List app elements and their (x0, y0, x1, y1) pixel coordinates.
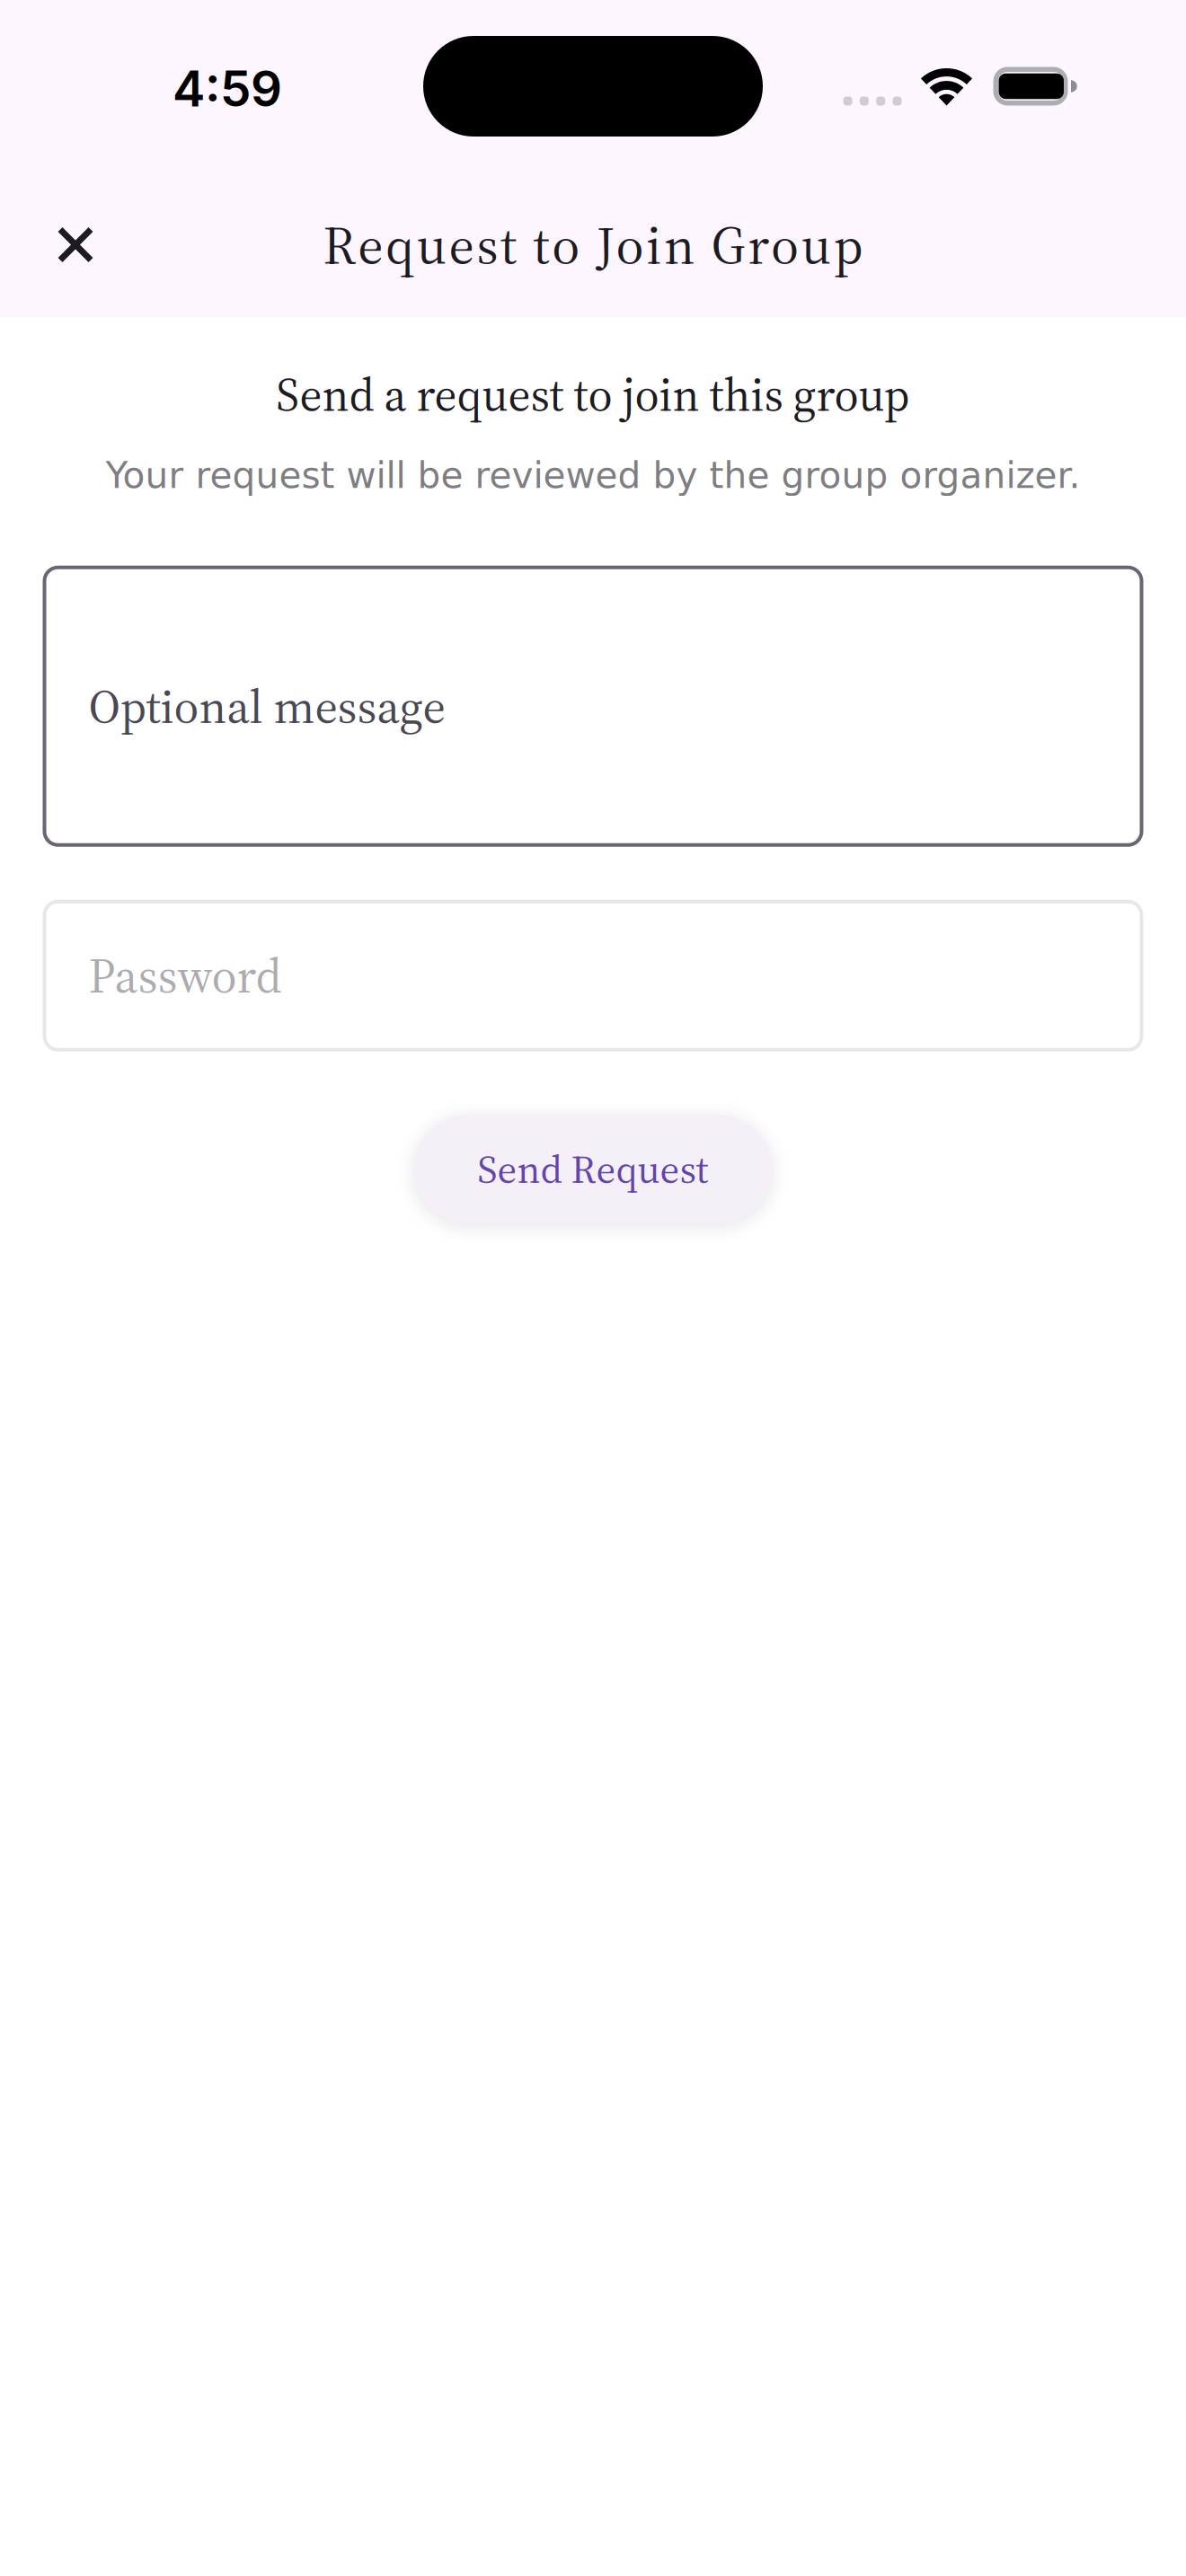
staticText: Password (89, 943, 282, 1008)
staticText: Your request will be reviewed by the gro… (106, 454, 1080, 497)
staticText: 4:59 (173, 59, 282, 118)
staticText: Send Request (478, 1142, 708, 1196)
staticText: Send a request to join this group (276, 363, 910, 426)
button[interactable]: Close (32, 202, 119, 288)
staticText: Optional message (89, 674, 445, 739)
staticText: Request to Join Group (323, 208, 863, 281)
button[interactable]: Send Request (414, 1114, 772, 1223)
